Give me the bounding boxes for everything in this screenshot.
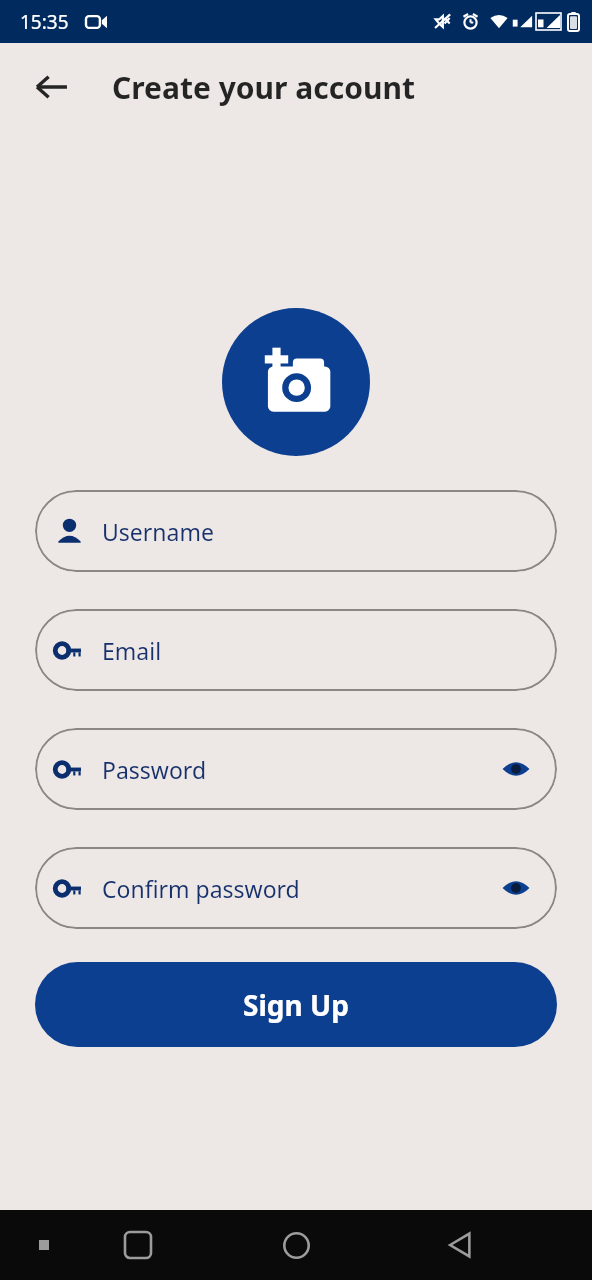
button[interactable]: Password xyxy=(35,728,557,810)
staticText: Sign Up xyxy=(243,986,349,1024)
button[interactable]: Home xyxy=(272,1221,320,1269)
staticText: Create your account xyxy=(112,67,415,108)
staticText: Username xyxy=(102,516,214,547)
button[interactable]: Email xyxy=(35,609,557,691)
button[interactable]: Username xyxy=(35,490,557,572)
staticText: 15:35 xyxy=(20,9,69,35)
button[interactable]: Sign Up xyxy=(35,962,557,1047)
staticText: Password xyxy=(102,754,207,785)
button[interactable]: Toggle password visibility xyxy=(497,750,535,788)
button[interactable]: Back xyxy=(436,1221,484,1269)
button[interactable]: Keyboard hide xyxy=(22,1223,66,1267)
button[interactable]: Toggle password visibility xyxy=(497,869,535,907)
button[interactable]: Confirm password xyxy=(35,847,557,929)
button[interactable]: Back xyxy=(24,59,80,115)
staticText: Confirm password xyxy=(102,873,300,904)
staticText: Email xyxy=(102,635,162,666)
button[interactable]: Add profile photo xyxy=(222,308,370,456)
button[interactable]: Recents xyxy=(114,1221,162,1269)
